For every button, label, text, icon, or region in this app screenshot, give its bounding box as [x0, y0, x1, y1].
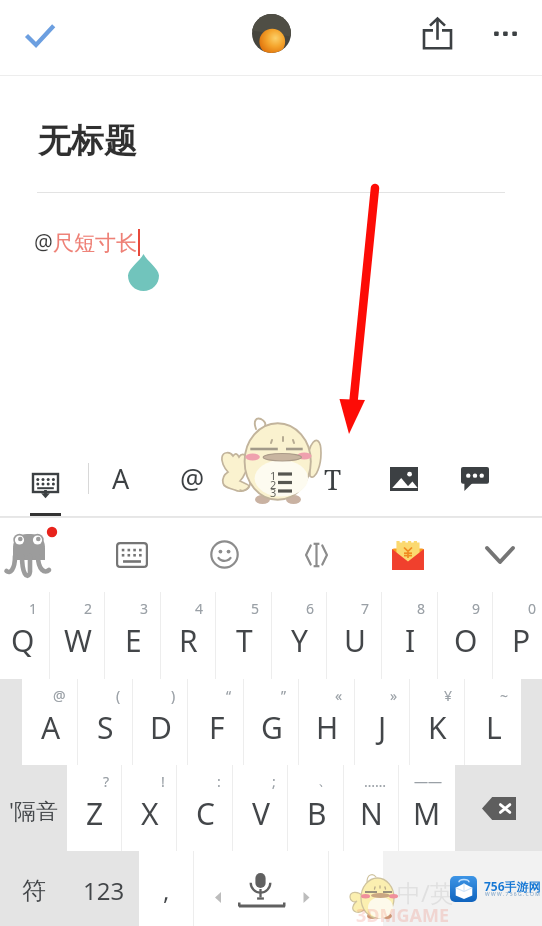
staticText: Z [86, 793, 104, 834]
button[interactable]: , [139, 851, 194, 926]
staticText: ~ [500, 686, 509, 705]
staticText: A [112, 460, 130, 497]
staticText: 8 [417, 599, 426, 618]
staticText: 4 [195, 599, 204, 618]
staticText: M [413, 793, 441, 834]
button[interactable]: 4 [161, 592, 216, 679]
button[interactable]: 8 [383, 592, 438, 679]
button[interactable]: Font size [91, 440, 151, 517]
button[interactable]: Enter [329, 851, 542, 926]
staticText: @ [34, 228, 53, 257]
staticText: 尺短寸长 [53, 230, 137, 256]
button[interactable]: ! [122, 765, 177, 851]
button[interactable]: Share [412, 0, 464, 76]
staticText: U [344, 620, 366, 661]
button[interactable]: Edit cursor [276, 517, 356, 592]
staticText: I [405, 620, 416, 661]
staticText: “ [226, 686, 232, 705]
staticText: P [512, 620, 531, 661]
button[interactable]: ” [244, 679, 299, 765]
staticText: 2 [84, 599, 93, 618]
staticText: 2 [270, 477, 277, 492]
button[interactable]: » [355, 679, 410, 765]
button[interactable]: Text style [303, 440, 363, 517]
staticText: S [97, 707, 114, 748]
staticText: T [324, 460, 342, 498]
button[interactable]: Backspace [455, 765, 542, 851]
staticText: » [390, 686, 398, 705]
staticText: Y [291, 620, 308, 661]
staticText: N [360, 793, 383, 834]
staticText: @ [53, 686, 66, 705]
staticText: 1 [270, 468, 277, 483]
staticText: H [316, 707, 339, 748]
staticText: 5 [251, 599, 260, 618]
staticText: 7 [361, 599, 370, 618]
button[interactable]: 9 [438, 592, 493, 679]
button[interactable]: 2 [50, 592, 105, 679]
button[interactable]: Insert image [374, 440, 434, 517]
button[interactable]: Sogou input [12, 527, 68, 577]
button[interactable]: —— [399, 765, 454, 851]
staticText: 123 [83, 874, 125, 907]
button[interactable]: 0 [494, 592, 542, 679]
button[interactable]: Ordered list [233, 440, 293, 517]
button[interactable]: 1 [0, 592, 50, 679]
staticText: B [307, 793, 327, 834]
button[interactable]: 7 [327, 592, 382, 679]
button[interactable]: …… [344, 765, 399, 851]
staticText: V [252, 793, 270, 834]
staticText: …… [364, 772, 387, 791]
button[interactable]: ? [67, 765, 122, 851]
button[interactable]: Comment [445, 440, 505, 517]
button[interactable]: Done [6, 0, 72, 76]
button[interactable]: Red packet [368, 517, 448, 592]
staticText: 1 [29, 599, 38, 618]
staticText: E [125, 620, 142, 661]
button[interactable]: “ [189, 679, 244, 765]
staticText: J [378, 707, 387, 748]
staticText: ; [272, 772, 276, 791]
button[interactable]: Collapse keyboard [460, 517, 540, 592]
button[interactable]: Hide keyboard [13, 440, 78, 517]
button[interactable]: ( [78, 679, 133, 765]
button[interactable]: Profile picture [252, 14, 291, 53]
staticText: W [64, 620, 92, 661]
staticText: ) [171, 686, 176, 705]
button[interactable]: '隔音 [0, 765, 67, 851]
button[interactable]: « [300, 679, 355, 765]
staticText: K [428, 707, 447, 748]
staticText: C [196, 793, 215, 834]
button[interactable]: ; [233, 765, 288, 851]
staticText: ! [161, 772, 165, 791]
staticText: G [261, 707, 283, 748]
staticText: Q [11, 620, 35, 661]
staticText: X [141, 793, 159, 834]
button[interactable]: 6 [272, 592, 327, 679]
button[interactable]: Mention [162, 440, 222, 517]
staticText: A [41, 707, 61, 748]
staticText: , [163, 874, 170, 907]
button[interactable]: 、 [289, 765, 344, 851]
button[interactable]: More options [484, 0, 528, 76]
button[interactable]: ) [133, 679, 188, 765]
staticText: 3 [140, 599, 149, 618]
staticText: 3DMGAME [356, 903, 449, 926]
staticText: 6 [306, 599, 315, 618]
staticText: 中/英 [397, 876, 454, 909]
button[interactable]: @ [23, 679, 78, 765]
button[interactable]: ~ [466, 679, 521, 765]
button[interactable]: Keyboard layout [92, 517, 172, 592]
button[interactable]: Emoji [184, 517, 264, 592]
staticText: 符 [22, 876, 46, 906]
button[interactable]: : [178, 765, 233, 851]
button[interactable]: 符 [0, 851, 68, 926]
button[interactable]: 123 [68, 851, 139, 926]
staticText: 0 [528, 599, 537, 618]
button[interactable]: 5 [217, 592, 272, 679]
button[interactable]: Space and voice input [194, 851, 328, 926]
button[interactable]: ¥ [410, 679, 465, 765]
button[interactable]: 3 [106, 592, 161, 679]
staticText: ? [103, 772, 110, 791]
staticText: '隔音 [9, 795, 58, 825]
